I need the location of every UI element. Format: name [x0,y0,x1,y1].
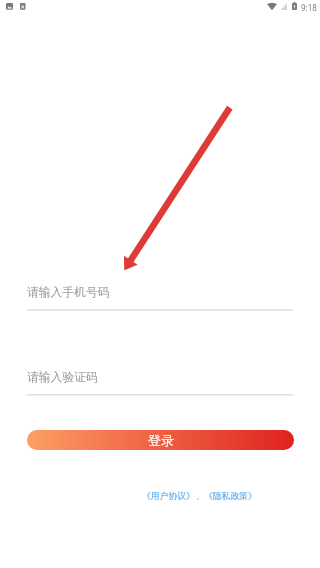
staticText: 请输入手机号码 [27,285,110,300]
button[interactable]: 登录 [27,430,294,450]
other: Wi-Fi [267,3,277,10]
staticText: 请输入验证码 [27,370,98,385]
button[interactable]: 请输入验证码 [0,368,320,397]
button[interactable]: 请输入手机号码 [0,283,320,312]
staticText: 、 [196,491,205,502]
button[interactable]: 《隐私政策》 [204,491,257,502]
other: Battery [292,2,297,10]
other: Notifications [6,3,26,10]
button[interactable]: 《用户协议》 [142,491,195,502]
staticText: 登录 [148,432,174,448]
staticText: 9:18 [301,2,317,13]
other: No signal [281,3,287,10]
